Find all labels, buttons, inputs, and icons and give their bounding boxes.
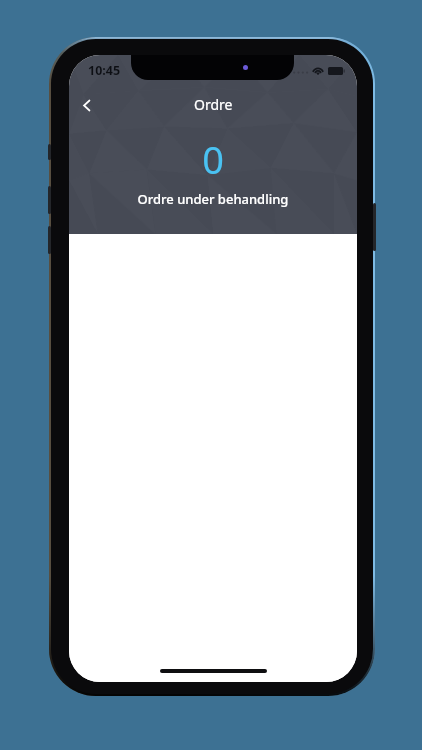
staticText: 10:45 (88, 62, 121, 79)
staticText: Ordre under behandling (69, 190, 357, 208)
staticText: 0 (69, 133, 357, 185)
staticText: Ordre (194, 95, 233, 114)
button[interactable]: Back (73, 92, 99, 118)
